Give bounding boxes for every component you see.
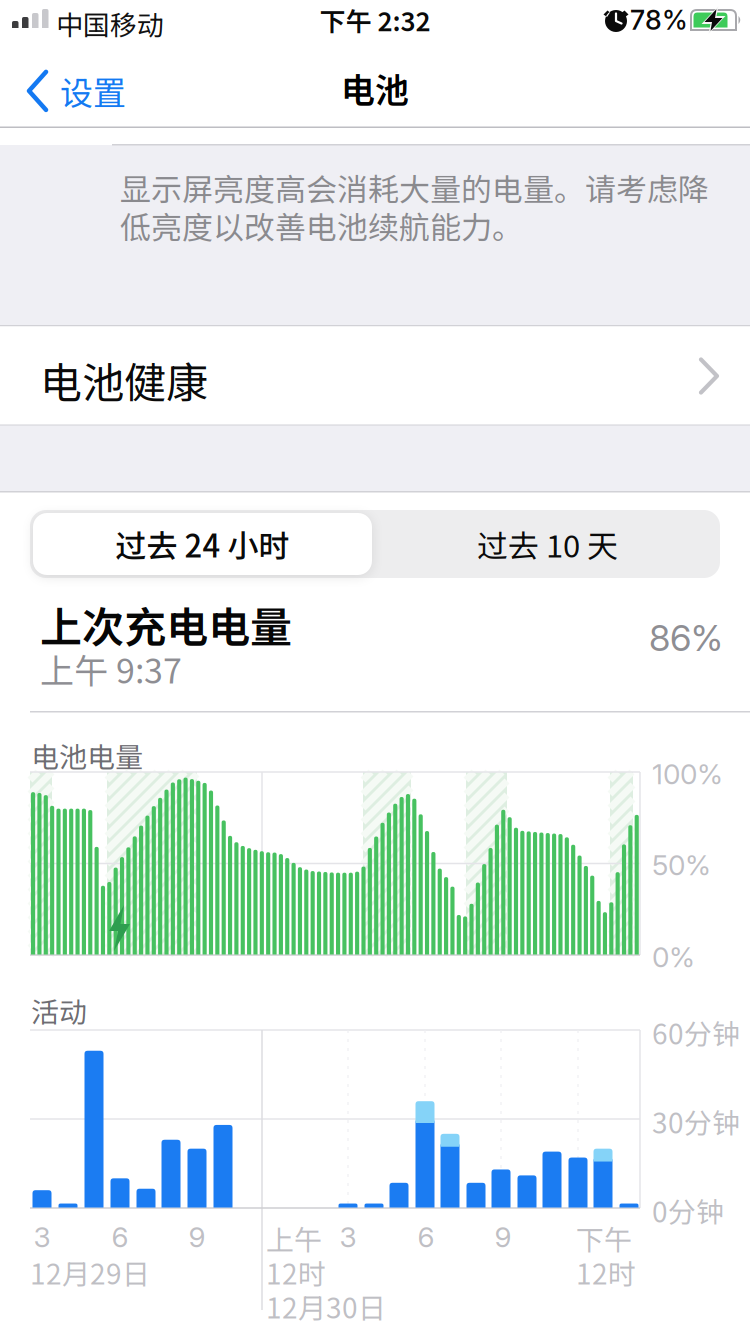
staticText: 电池健康 xyxy=(40,349,208,410)
staticText: 0% xyxy=(652,940,695,974)
staticText: 86% xyxy=(649,616,723,660)
staticText: 12时 xyxy=(266,1252,326,1292)
staticText: 0分钟 xyxy=(652,1190,724,1230)
staticText: 上午 9:37 xyxy=(40,644,182,693)
staticText: 下午 2:32 xyxy=(319,1,430,39)
staticText: 78% xyxy=(630,4,688,36)
button[interactable]: 过去 24 小时 xyxy=(30,510,375,578)
staticText: 9 xyxy=(188,1220,205,1254)
staticText: 9 xyxy=(494,1220,511,1254)
staticText: 活动 xyxy=(31,990,87,1030)
button[interactable]: 电池健康 xyxy=(0,326,750,424)
staticText: 上次充电电量 xyxy=(40,594,292,655)
staticText: 上午 xyxy=(266,1218,322,1258)
staticText: 12月29日 xyxy=(30,1252,150,1292)
button[interactable]: 设置 xyxy=(26,67,126,115)
staticText: 中国移动 xyxy=(56,4,164,43)
staticText: 50% xyxy=(652,848,711,882)
staticText: 100% xyxy=(652,757,723,791)
staticText: 设置 xyxy=(60,67,126,115)
staticText: 6 xyxy=(417,1220,434,1254)
staticText: 3 xyxy=(33,1220,50,1254)
staticText: 60分钟 xyxy=(652,1012,740,1052)
staticText: 3 xyxy=(339,1220,356,1254)
staticText: 电池 xyxy=(341,63,409,113)
button[interactable]: 过去 10 天 xyxy=(375,510,720,578)
staticText: 下午 xyxy=(576,1218,632,1258)
staticText: 显示屏亮度高会消耗大量的电量。请考虑降 xyxy=(120,165,709,210)
staticText: 12月30日 xyxy=(266,1286,386,1326)
staticText: 过去 24 小时 xyxy=(115,522,289,566)
staticText: 30分钟 xyxy=(652,1101,740,1141)
staticText: 低亮度以改善电池续航能力。 xyxy=(120,203,523,248)
staticText: 12时 xyxy=(576,1252,636,1292)
staticText: 6 xyxy=(111,1220,128,1254)
staticText: 过去 10 天 xyxy=(477,522,618,566)
staticText: 电池电量 xyxy=(31,735,143,775)
